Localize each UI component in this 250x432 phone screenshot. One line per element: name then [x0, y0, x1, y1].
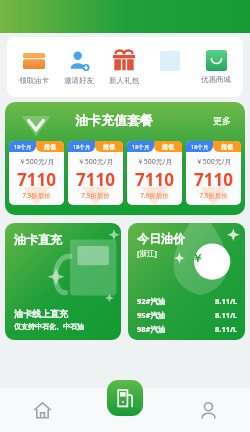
staticText: 7110	[186, 168, 241, 191]
staticText: 超值	[162, 143, 174, 151]
staticText: ￥	[192, 251, 203, 265]
staticText: ￥500元/月	[127, 157, 182, 167]
staticText: 18个月	[73, 143, 91, 151]
button[interactable]: 18个月	[127, 141, 182, 205]
staticText: 油卡线上直充	[14, 308, 68, 319]
staticText: 8.11/L	[215, 324, 238, 334]
staticText: 仅支持中石化、中石油	[14, 322, 84, 331]
staticText: 7.9折后价	[127, 191, 182, 200]
button[interactable]: 18个月	[68, 141, 123, 205]
staticText: 92#汽油	[137, 296, 166, 306]
staticText: 优惠商城	[201, 75, 231, 84]
button[interactable]: 领取油卡	[11, 37, 56, 97]
staticText: 邀请好友	[64, 76, 94, 85]
staticText: 油卡充值套餐	[75, 112, 153, 128]
staticText: 7110	[127, 168, 182, 191]
staticText: [浙江]	[137, 248, 157, 258]
staticText: 98#汽油	[137, 324, 166, 334]
staticText: 7.9折后价	[9, 191, 64, 200]
staticText: 18个月	[132, 143, 150, 151]
button[interactable]: 18个月	[9, 141, 64, 205]
button[interactable]: 油卡直充	[5, 223, 121, 340]
staticText: 7.9折后价	[186, 191, 241, 200]
staticText: ￥500元/月	[186, 157, 241, 167]
staticText: 7110	[9, 168, 64, 191]
staticText: 7110	[68, 168, 123, 191]
staticText: 超值	[44, 143, 56, 151]
button[interactable]: Refuel	[107, 380, 143, 416]
staticText: 今日油价	[137, 231, 185, 246]
button[interactable]: 邀请好友	[56, 37, 101, 97]
button[interactable]: ￥	[128, 223, 245, 340]
button[interactable]: 18个月	[186, 141, 241, 205]
staticText: 8.11/L	[215, 296, 238, 306]
staticText: ￥500元/月	[9, 157, 64, 167]
staticText: 7.9折后价	[68, 191, 123, 200]
button[interactable]: Home	[0, 388, 84, 432]
staticText: 8.11/L	[215, 310, 238, 320]
button[interactable]: Profile	[167, 388, 250, 432]
button[interactable]: 优惠商城	[193, 37, 239, 97]
staticText: 18个月	[191, 143, 209, 151]
staticText: 超值	[103, 143, 115, 151]
button[interactable]: 新人礼包	[101, 37, 147, 97]
staticText: ￥500元/月	[68, 157, 123, 167]
button[interactable]: Quick action	[147, 37, 193, 97]
staticText: 油卡直充	[14, 232, 62, 247]
staticText: 95#汽油	[137, 310, 166, 320]
button[interactable]: 更多	[211, 113, 233, 128]
staticText: 更多	[213, 115, 231, 126]
staticText: 领取油卡	[19, 76, 49, 85]
staticText: 超值	[221, 143, 233, 151]
staticText: 18个月	[14, 143, 32, 151]
staticText: 新人礼包	[109, 76, 139, 85]
